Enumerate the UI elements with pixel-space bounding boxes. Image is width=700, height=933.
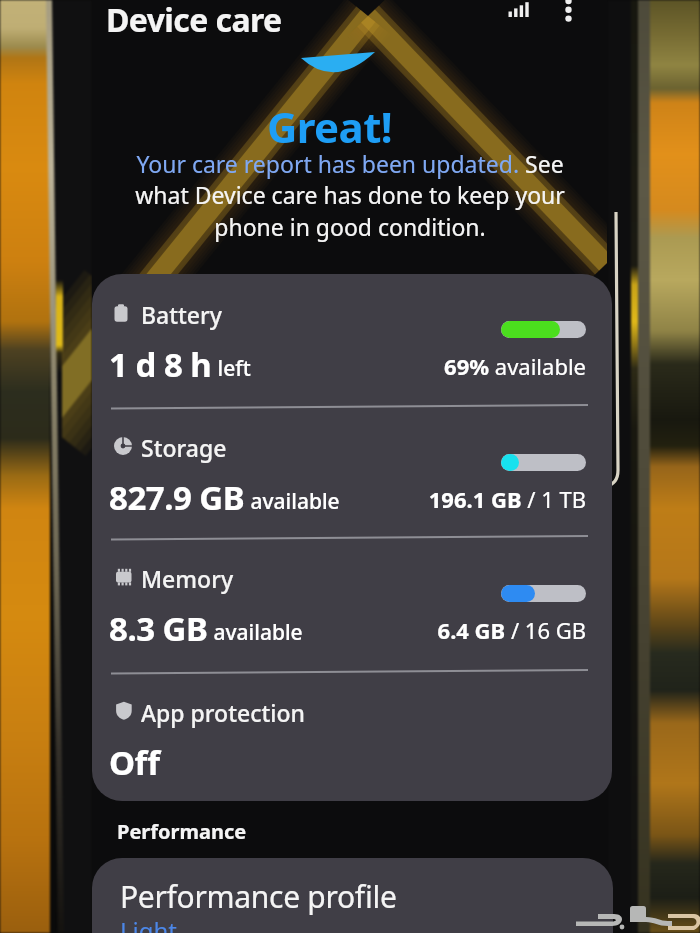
staticText: Battery bbox=[141, 299, 222, 330]
staticText: Light bbox=[120, 914, 178, 933]
button[interactable]: More options bbox=[549, 0, 589, 32]
button[interactable]: Battery bbox=[92, 274, 612, 407]
staticText: Performance bbox=[117, 818, 247, 845]
button[interactable]: App protection bbox=[92, 672, 612, 801]
staticText: 196.1 GB / 1 TB bbox=[392, 484, 586, 514]
staticText: left bbox=[212, 354, 251, 383]
button[interactable]: Usage statistics bbox=[498, 0, 538, 40]
staticText: Great! bbox=[72, 98, 587, 155]
staticText: 69% available bbox=[392, 351, 586, 381]
staticText: Off bbox=[109, 740, 160, 785]
button[interactable]: Storage bbox=[92, 407, 612, 538]
staticText: 6.4 GB / 16 GB bbox=[392, 615, 586, 645]
staticText: available bbox=[245, 487, 340, 516]
staticText: 8.3 GB bbox=[109, 606, 208, 651]
staticText: Memory bbox=[141, 563, 234, 594]
button[interactable]: Memory bbox=[92, 538, 612, 672]
staticText: App protection bbox=[141, 697, 305, 728]
staticText: available bbox=[208, 618, 303, 647]
staticText: 1 d 8 h bbox=[109, 342, 212, 387]
button[interactable]: Device care bbox=[106, 0, 282, 42]
staticText: Performance profile bbox=[120, 876, 397, 917]
button[interactable]: Performance profile bbox=[92, 858, 613, 933]
staticText: Your care report has been updated. See w… bbox=[127, 148, 573, 243]
staticText: Storage bbox=[141, 432, 227, 463]
staticText: 827.9 GB bbox=[109, 475, 245, 520]
